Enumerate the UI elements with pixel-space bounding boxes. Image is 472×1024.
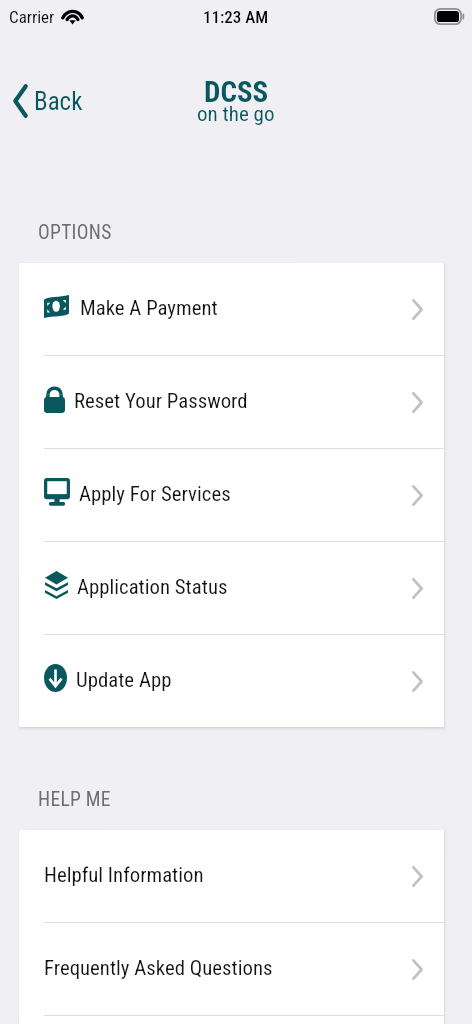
button[interactable]: Apply For Services — [19, 449, 444, 541]
staticText: OPTIONS — [38, 221, 112, 244]
button[interactable]: Back — [0, 78, 97, 124]
staticText: DCSS — [204, 75, 269, 109]
staticText: Update App — [76, 668, 172, 692]
staticText: Frequently Asked Questions — [44, 956, 273, 980]
staticText: Application Status — [77, 575, 228, 599]
staticText: Reset Your Password — [74, 389, 248, 413]
other: Wi-Fi signal — [62, 9, 83, 25]
staticText: Apply For Services — [79, 482, 231, 506]
other: Battery full — [434, 8, 465, 25]
staticText: on the go — [197, 102, 275, 127]
button[interactable]: Reset Your Password — [19, 356, 444, 448]
button[interactable]: Frequently Asked Questions — [19, 923, 444, 1015]
staticText: Carrier — [9, 7, 55, 27]
button[interactable]: Update App — [19, 635, 444, 727]
staticText: Make A Payment — [80, 296, 218, 320]
button[interactable]: Helpful Information — [19, 830, 444, 922]
staticText: Helpful Information — [44, 863, 204, 887]
button[interactable]: Make A Payment — [19, 263, 444, 355]
staticText: Back — [34, 87, 83, 116]
staticText: 11:23 AM — [203, 7, 269, 27]
button[interactable]: Application Status — [19, 542, 444, 634]
staticText: HELP ME — [38, 788, 111, 811]
